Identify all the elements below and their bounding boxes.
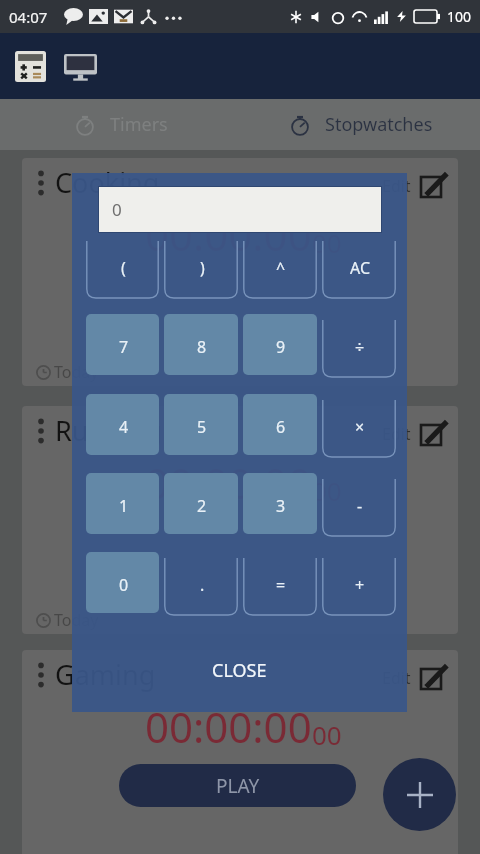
staticText: ) <box>200 257 205 279</box>
button[interactable]: Screen <box>63 49 97 83</box>
staticText: 3 <box>276 495 286 517</box>
staticText: 0 <box>119 574 129 596</box>
staticText: 2 <box>197 495 207 517</box>
button[interactable]: × <box>322 394 396 455</box>
button[interactable]: CLOSE <box>72 628 407 712</box>
staticText: × <box>355 416 365 438</box>
staticText: 00 <box>312 473 342 508</box>
staticText: = <box>276 574 286 596</box>
button[interactable]: . <box>164 552 238 613</box>
staticText: - <box>357 495 363 517</box>
staticText: 00 <box>312 225 342 260</box>
button[interactable]: 4 <box>86 394 159 455</box>
staticText: Edit <box>382 175 411 197</box>
button[interactable]: + <box>322 552 396 613</box>
staticText: 5 <box>197 416 207 438</box>
button[interactable]: Running <box>22 406 458 634</box>
button[interactable]: 2 <box>164 473 238 534</box>
button[interactable]: ÷ <box>322 314 396 375</box>
staticText: + <box>355 574 365 596</box>
button[interactable]: Add stopwatch <box>383 758 456 831</box>
button[interactable]: ( <box>86 235 159 296</box>
staticText: Today <box>54 361 99 383</box>
button[interactable]: ^ <box>243 235 317 296</box>
staticText: ÷ <box>355 336 365 358</box>
staticText: 9 <box>276 336 286 358</box>
staticText: 00:00:00 <box>145 206 312 263</box>
staticText: 8 <box>197 336 207 358</box>
staticText: Running <box>55 412 163 449</box>
staticText: Timers <box>110 112 168 137</box>
button[interactable]: Cooking <box>22 158 458 386</box>
button[interactable]: 0 <box>86 552 159 613</box>
staticText: 7 <box>119 336 129 358</box>
staticText: 04:07 <box>9 7 48 27</box>
button[interactable]: Calculator <box>13 49 47 83</box>
staticText: 6 <box>276 416 286 438</box>
button[interactable]: 7 <box>86 314 159 375</box>
staticText: Today <box>54 609 99 631</box>
button[interactable]: Stopwatches <box>240 99 480 150</box>
staticText: Edit <box>382 423 411 445</box>
staticText: 1 <box>119 495 129 517</box>
button[interactable]: = <box>243 552 317 613</box>
staticText: Gaming <box>55 656 156 693</box>
button[interactable]: Edit <box>420 422 444 446</box>
button[interactable]: 9 <box>243 314 317 375</box>
staticText: . <box>200 574 205 596</box>
staticText: ^ <box>276 257 286 279</box>
staticText: 00 <box>312 717 342 752</box>
button[interactable]: AC <box>322 235 396 296</box>
button[interactable]: Edit <box>420 174 444 198</box>
staticText: Cooking <box>55 164 160 201</box>
staticText: 4 <box>119 416 129 438</box>
staticText: 00:00:00 <box>145 698 312 755</box>
button[interactable]: 1 <box>86 473 159 534</box>
button[interactable]: Gaming <box>22 650 458 854</box>
staticText: 0 <box>112 198 122 221</box>
button[interactable]: 6 <box>243 394 317 455</box>
staticText: CLOSE <box>212 658 267 683</box>
staticText: 00:00:00 <box>145 454 312 511</box>
staticText: PLAY <box>216 773 260 799</box>
button[interactable]: 8 <box>164 314 238 375</box>
staticText: ( <box>121 257 126 279</box>
button[interactable]: 3 <box>243 473 317 534</box>
button[interactable]: - <box>322 473 396 534</box>
staticText: 100 <box>447 7 472 26</box>
button[interactable]: PLAY <box>119 764 356 807</box>
button[interactable]: 5 <box>164 394 238 455</box>
staticText: AC <box>350 257 371 279</box>
staticText: Stopwatches <box>325 112 433 137</box>
button[interactable]: ) <box>164 235 238 296</box>
staticText: Edit <box>382 667 411 689</box>
button[interactable]: Edit <box>420 666 444 690</box>
